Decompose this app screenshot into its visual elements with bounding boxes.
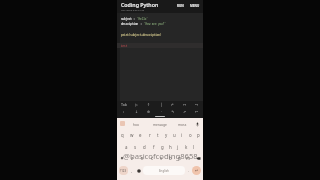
staticText: print(subject+description)	[121, 33, 162, 37]
staticText: n	[178, 155, 181, 161]
button[interactable]: e	[136, 130, 145, 140]
button[interactable]: ⊕	[143, 108, 155, 115]
button[interactable]: v	[157, 153, 166, 163]
button[interactable]: │	[155, 101, 167, 108]
button[interactable]: ↑	[143, 101, 155, 108]
staticText: description	[121, 22, 139, 26]
button[interactable]: ↱	[167, 101, 179, 108]
button[interactable]: d	[140, 142, 149, 152]
staticText: 'Hello'	[137, 17, 148, 21]
staticText: ⊕	[147, 110, 151, 114]
staticText: .	[188, 168, 190, 173]
staticText: d	[143, 144, 146, 150]
staticText: MENU	[190, 4, 200, 8]
button[interactable]: Shift	[118, 153, 126, 163]
staticText: ↓	[135, 110, 139, 114]
staticText: z	[131, 155, 134, 161]
button[interactable]: Clipboard	[120, 121, 125, 126]
button[interactable]: moss	[171, 118, 194, 129]
button[interactable]: l	[190, 142, 198, 152]
staticText: c	[151, 155, 154, 161]
button[interactable]: ‹	[117, 108, 130, 115]
button[interactable]: i	[178, 130, 186, 140]
staticText: l	[193, 144, 195, 150]
button[interactable]: Backspace	[194, 153, 202, 163]
button[interactable]: y	[162, 130, 170, 140]
button[interactable]: ↰	[167, 108, 179, 115]
button[interactable]: o	[186, 130, 194, 140]
button[interactable]: z	[127, 153, 137, 163]
button[interactable]: hoo	[125, 118, 148, 129]
button[interactable]: ↦	[179, 101, 191, 108]
staticText: ·	[161, 109, 162, 114]
staticText: =	[132, 17, 137, 21]
button[interactable]: n	[175, 153, 184, 163]
button[interactable]: Tab	[117, 101, 130, 108]
button[interactable]: Coding Python	[121, 1, 159, 11]
staticText: ?123	[120, 169, 127, 173]
button[interactable]: b	[166, 153, 175, 163]
button[interactable]: ·	[155, 108, 167, 115]
button[interactable]: ↗	[179, 108, 191, 115]
staticText: k	[185, 144, 188, 150]
staticText: ↑	[147, 103, 151, 107]
button[interactable]: x	[137, 153, 147, 163]
button[interactable]: f	[149, 142, 158, 152]
button[interactable]: a	[122, 142, 131, 152]
staticText: e	[139, 132, 142, 138]
button[interactable]: q	[118, 130, 127, 140]
staticText: last saved 8:02:07:98	[121, 8, 145, 11]
button[interactable]: p	[194, 130, 202, 140]
staticText: @basicofcoding8658	[123, 151, 198, 161]
button[interactable]: message	[148, 118, 171, 129]
staticText: ,	[131, 168, 133, 173]
staticText: g	[161, 144, 164, 150]
button[interactable]: u	[170, 130, 178, 140]
staticText: message	[153, 122, 167, 126]
staticText: q	[121, 132, 124, 138]
staticText: ↱	[171, 103, 175, 107]
button[interactable]: ,	[128, 166, 135, 175]
button[interactable]: k	[182, 142, 190, 152]
button[interactable]: MENU	[189, 3, 201, 9]
staticText: English	[159, 169, 169, 173]
button[interactable]: h	[166, 142, 174, 152]
button[interactable]: c	[147, 153, 157, 163]
staticText: ↵	[195, 168, 199, 173]
staticText: moss	[178, 122, 187, 126]
staticText: RUN	[177, 4, 184, 8]
button[interactable]: s	[131, 142, 140, 152]
staticText: y	[165, 132, 168, 138]
button[interactable]: m	[184, 153, 193, 163]
button[interactable]: ↪	[191, 101, 203, 108]
staticText: ↩	[195, 110, 199, 114]
staticText: f	[153, 144, 155, 150]
staticText: p	[197, 132, 200, 138]
button[interactable]: r	[145, 130, 154, 140]
button[interactable]: Voice input	[194, 121, 200, 127]
button[interactable]: t	[154, 130, 162, 140]
staticText: subject	[121, 17, 132, 21]
staticText: w	[130, 132, 134, 138]
button[interactable]: .	[186, 166, 192, 175]
staticText: r	[149, 132, 151, 138]
button[interactable]: ↩	[191, 108, 203, 115]
button[interactable]: English	[143, 166, 185, 175]
button[interactable]: RUN	[176, 3, 185, 9]
button[interactable]: w	[127, 130, 136, 140]
button[interactable]: Emoji	[135, 166, 142, 175]
button[interactable]: j	[174, 142, 182, 152]
staticText: o	[189, 132, 192, 138]
staticText: hoo	[133, 122, 140, 126]
staticText: ↗	[183, 110, 187, 114]
staticText: u	[173, 132, 176, 138]
button[interactable]: ▷	[130, 101, 143, 108]
staticText: s	[134, 144, 137, 150]
staticText: x	[141, 155, 144, 161]
button[interactable]: Enter	[192, 166, 201, 175]
button[interactable]: g	[158, 142, 166, 152]
staticText: │	[160, 103, 163, 107]
staticText: j	[177, 144, 179, 150]
button[interactable]: ?123	[119, 166, 128, 175]
button[interactable]: ↓	[130, 108, 143, 115]
